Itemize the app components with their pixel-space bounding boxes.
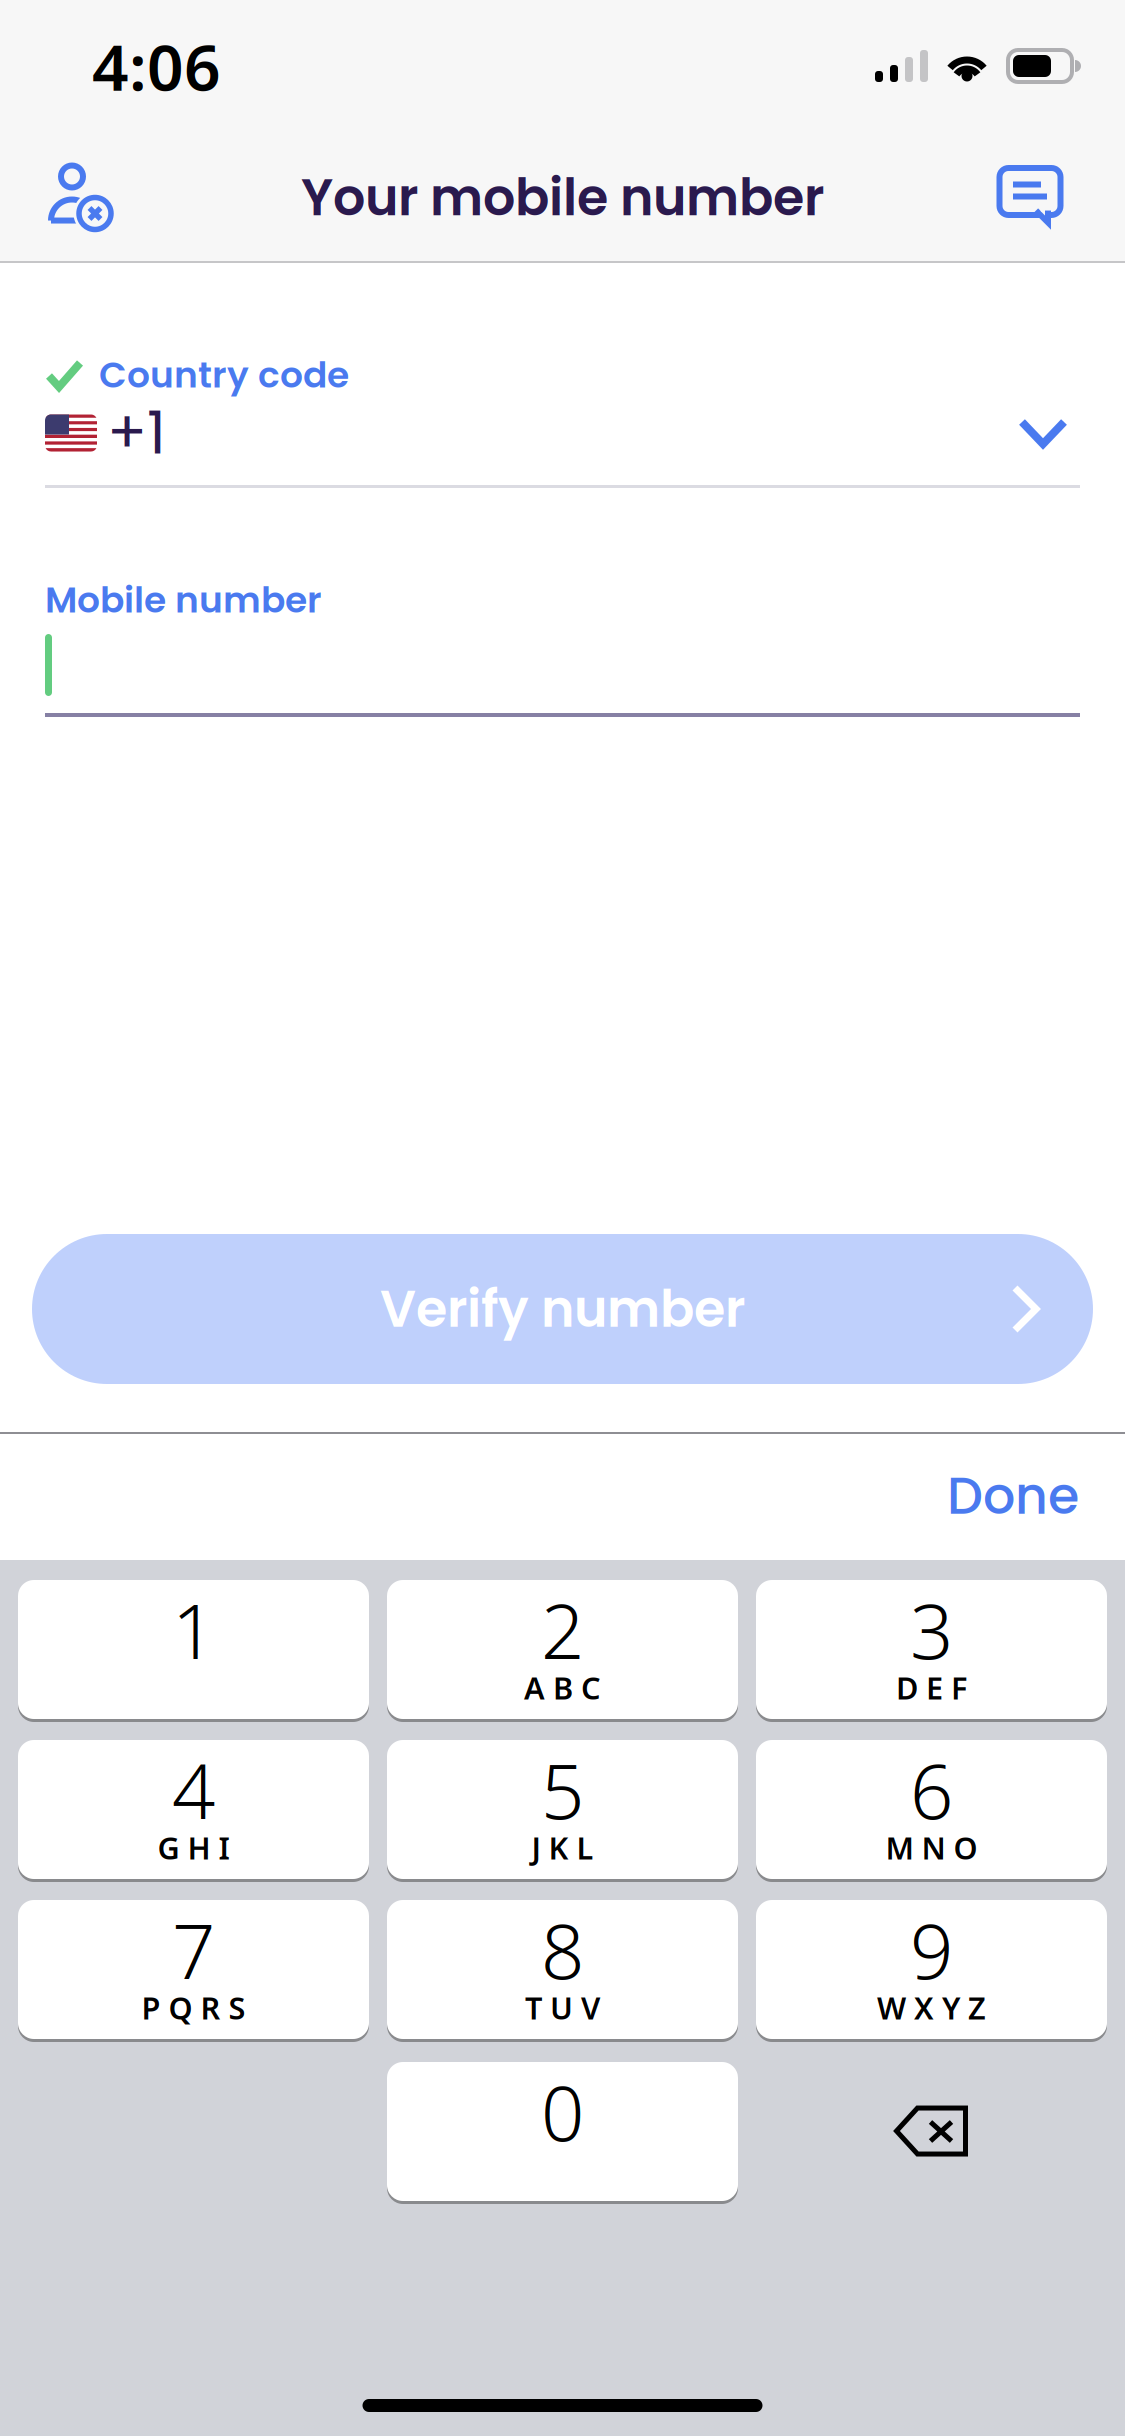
staticText: M N O (885, 1827, 977, 1868)
button[interactable]: Remove contact (28, 142, 138, 252)
button[interactable]: 3 (756, 1580, 1107, 1719)
staticText: 0 (541, 2061, 584, 2162)
staticText: 1 (172, 1579, 215, 1680)
button[interactable]: Done (901, 1438, 1125, 1553)
button[interactable]: 8 (387, 1900, 738, 2039)
button[interactable]: 1 (18, 1580, 369, 1719)
button[interactable]: 4 (18, 1740, 369, 1879)
button[interactable]: Verify number (32, 1234, 1093, 1384)
staticText: Country code (99, 350, 349, 400)
button[interactable]: Support chat (975, 142, 1085, 252)
staticText: P Q R S (141, 1987, 245, 2028)
staticText: 5 (541, 1739, 584, 1840)
staticText: Verify number (380, 1273, 745, 1344)
staticText: Mobile number (45, 575, 322, 625)
button[interactable]: Choose country code (995, 401, 1091, 465)
staticText: Your mobile number (301, 162, 824, 233)
staticText: 4:06 (92, 23, 221, 108)
staticText: 2 (541, 1579, 584, 1680)
staticText: A B C (524, 1667, 601, 1708)
staticText: +1 (107, 392, 166, 474)
button[interactable]: 7 (18, 1900, 369, 2039)
button[interactable]: 5 (387, 1740, 738, 1879)
staticText: G H I (157, 1827, 229, 1868)
staticText: Done (947, 1460, 1079, 1531)
staticText: 9 (910, 1899, 953, 2000)
button[interactable]: 0 (387, 2062, 738, 2201)
button[interactable]: 6 (756, 1740, 1107, 1879)
staticText: 8 (541, 1899, 584, 2000)
staticText: W X Y Z (877, 1987, 986, 2028)
staticText: 4 (172, 1739, 215, 1840)
staticText: T U V (525, 1987, 600, 2028)
button[interactable]: 2 (387, 1580, 738, 1719)
staticText: J K L (531, 1827, 593, 1868)
staticText: 3 (910, 1579, 953, 1680)
button[interactable]: Delete (756, 2062, 1107, 2201)
staticText: D E F (896, 1667, 967, 1708)
button[interactable]: 9 (756, 1900, 1107, 2039)
staticText: 7 (172, 1899, 215, 2000)
staticText: 6 (910, 1739, 953, 1840)
